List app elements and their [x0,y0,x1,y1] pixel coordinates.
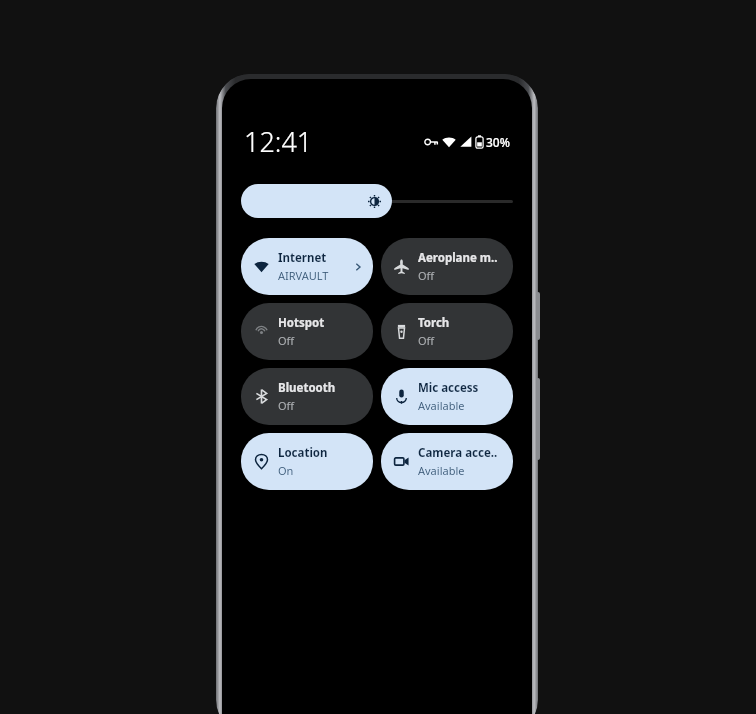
staticText: Location [278,445,328,461]
staticText: 30% [486,134,510,150]
button[interactable]: Mic access [381,368,513,425]
button[interactable]: Internet [241,238,373,295]
staticText: Off [418,268,435,283]
staticText: Internet [278,250,327,266]
staticText: Camera acce.. [418,445,498,461]
staticText: Mic access [418,380,479,396]
button[interactable]: Location [241,433,373,490]
staticText: Available [418,398,465,413]
staticText: Bluetooth [278,380,336,396]
button[interactable]: Aeroplane m.. [381,238,513,295]
button[interactable]: Torch [381,303,513,360]
staticText: Hotspot [278,315,325,331]
staticText: 12:41 [244,123,313,160]
other: Brightness [368,195,381,208]
button[interactable]: Hotspot [241,303,373,360]
staticText: Off [278,333,295,348]
staticText: AIRVAULT [278,268,329,283]
staticText: On [278,463,294,478]
button[interactable]: Bluetooth [241,368,373,425]
button[interactable]: Brightness [241,184,392,218]
staticText: Torch [418,315,450,331]
staticText: Off [418,333,435,348]
staticText: Off [278,398,295,413]
staticText: Aeroplane m.. [418,250,498,266]
staticText: Available [418,463,465,478]
button[interactable]: Camera acce.. [381,433,513,490]
